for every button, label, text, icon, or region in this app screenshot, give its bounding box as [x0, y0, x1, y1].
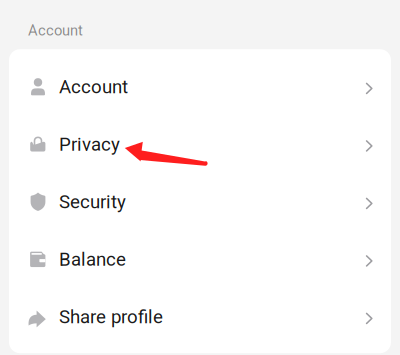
staticText: Security — [59, 191, 126, 213]
button[interactable]: Balance — [9, 231, 391, 288]
button[interactable]: Share profile — [9, 288, 391, 346]
button[interactable]: Security — [9, 173, 391, 231]
staticText: Account — [28, 22, 83, 39]
staticText: Account — [59, 76, 128, 98]
button[interactable]: Account — [9, 58, 391, 116]
button[interactable]: Privacy — [9, 116, 391, 173]
staticText: Share profile — [59, 306, 163, 328]
staticText: Privacy — [59, 133, 120, 155]
staticText: Balance — [59, 248, 126, 270]
